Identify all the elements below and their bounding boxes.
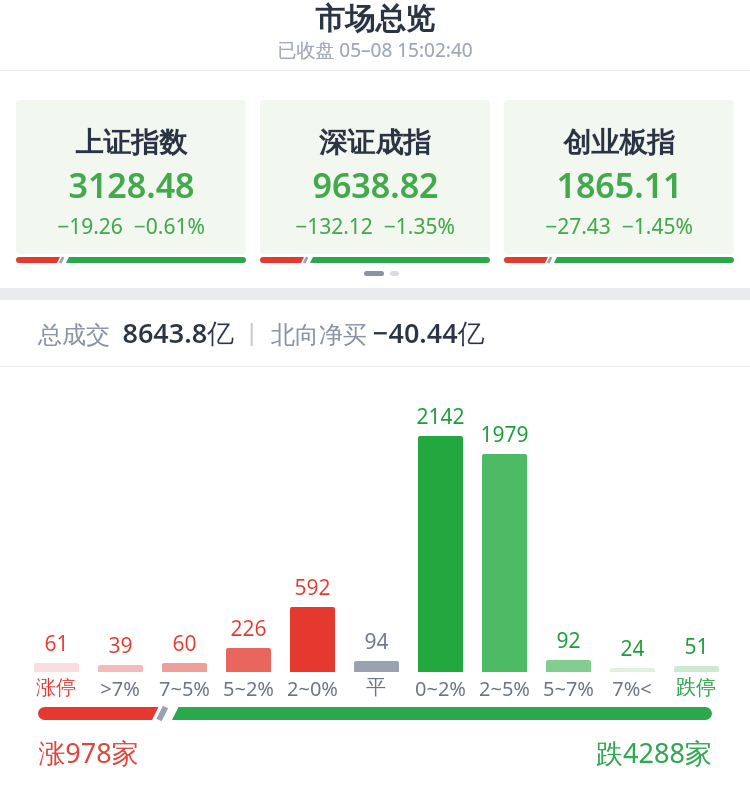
button[interactable]: 创业板指 — [504, 100, 734, 254]
staticText: 深证成指 — [319, 125, 431, 160]
staticText: 92 — [556, 626, 581, 655]
staticText: 592 — [294, 573, 331, 602]
staticText: 51 — [684, 632, 709, 661]
staticText: 涨停 — [36, 675, 76, 699]
staticText: 1979 — [480, 420, 529, 449]
staticText: 226 — [230, 614, 267, 643]
staticText: −19.26 −0.61% — [57, 212, 205, 241]
staticText: 总成交 8643.8亿 丨 北向净买 −40.44亿 — [38, 314, 485, 351]
staticText: 涨978家 — [38, 734, 139, 771]
staticText: 94 — [364, 627, 389, 656]
staticText: 创业板指 — [563, 125, 675, 160]
staticText: 平 — [366, 675, 386, 699]
staticText: >7% — [100, 675, 140, 699]
staticText: 7~5% — [159, 675, 210, 699]
staticText: −27.43 −1.45% — [545, 212, 693, 241]
staticText: 3128.48 — [68, 162, 195, 207]
button[interactable]: 上证指数 — [16, 100, 246, 254]
staticText: 7%< — [612, 675, 652, 699]
staticText: 上证指数 — [75, 125, 187, 160]
staticText: 9638.82 — [312, 162, 439, 207]
staticText: 39 — [108, 631, 133, 660]
staticText: 0~2% — [415, 675, 466, 699]
staticText: 2~0% — [287, 675, 338, 699]
staticText: 5~7% — [543, 675, 594, 699]
staticText: 跌停 — [676, 675, 716, 699]
staticText: 市场总览 — [315, 0, 435, 38]
staticText: 5~2% — [223, 675, 274, 699]
staticText: 2~5% — [479, 675, 530, 699]
staticText: 24 — [620, 634, 645, 663]
staticText: 61 — [44, 629, 69, 658]
staticText: −132.12 −1.35% — [295, 212, 455, 241]
staticText: 跌4288家 — [596, 734, 712, 771]
staticText: 60 — [172, 629, 197, 658]
button[interactable]: 深证成指 — [260, 100, 490, 254]
staticText: 已收盘 05–08 15:02:40 — [277, 37, 473, 63]
staticText: 2142 — [416, 402, 465, 431]
staticText: 1865.11 — [556, 162, 683, 207]
